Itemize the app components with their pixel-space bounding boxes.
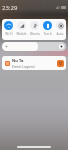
staticText: Nu Ta [12,58,24,63]
staticText: Mobile [16,32,27,36]
button[interactable]: Brightness [2,42,66,51]
staticText: Emisii Logiesti [12,64,35,69]
button[interactable]: Blueto [28,21,41,40]
button[interactable]: Nu Ta [2,56,66,70]
button[interactable]: Mobile [15,21,28,40]
staticText: 23:29 [2,4,18,12]
button[interactable]: Torch [41,21,54,40]
staticText: Torch [43,32,52,36]
button[interactable]: Wi-Fi [2,21,15,40]
staticText: Auto [56,32,64,36]
staticText: Wi-Fi [5,32,13,36]
button[interactable]: Auto [54,21,66,40]
staticText: Blueto [30,32,40,36]
